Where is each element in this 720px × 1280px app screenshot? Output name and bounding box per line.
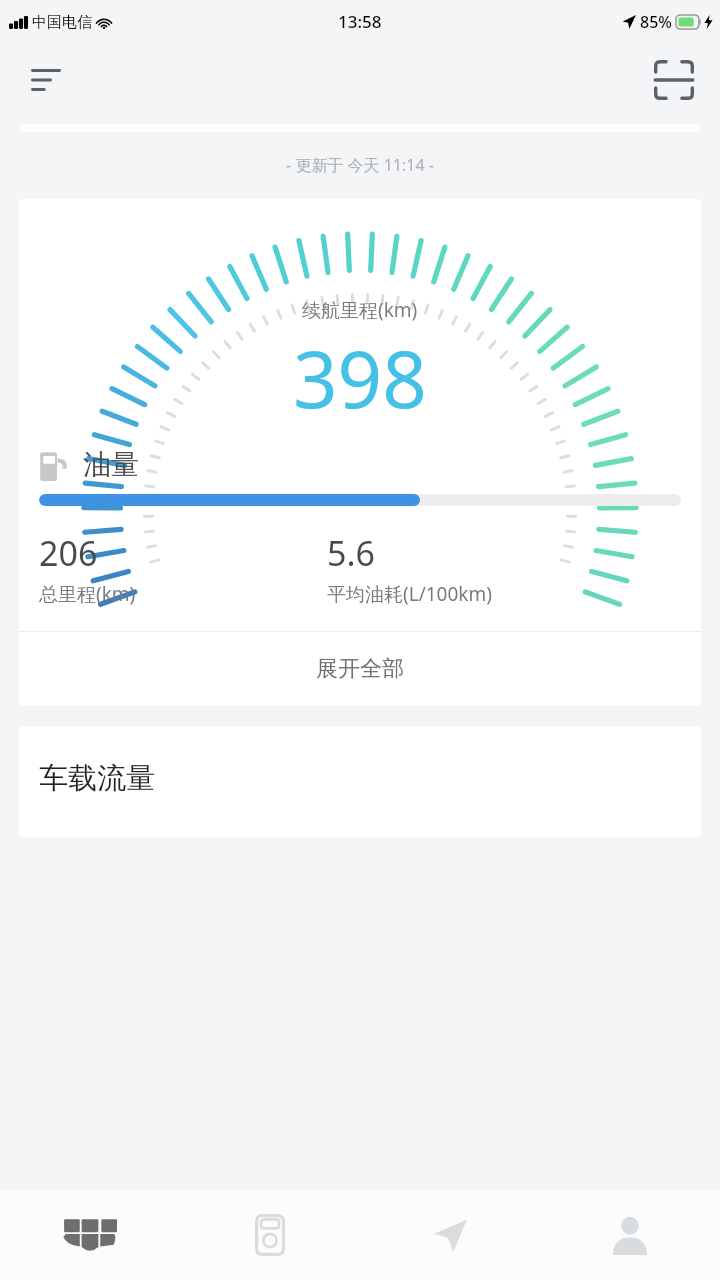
button[interactable]: Navigation (360, 1190, 540, 1280)
button[interactable]: Vehicle (0, 1190, 180, 1280)
staticText: 展开全部 (316, 655, 404, 683)
staticText: 206 (39, 530, 98, 576)
button[interactable]: 展开全部 (19, 632, 701, 706)
staticText: 85% (640, 11, 672, 33)
button[interactable]: Menu (18, 52, 74, 108)
button[interactable]: Profile (540, 1190, 720, 1280)
staticText: 中国电信 (32, 13, 92, 32)
staticText: 13:58 (338, 10, 382, 33)
staticText: 油量 (83, 447, 139, 482)
staticText: 平均油耗(L/100km) (327, 581, 492, 607)
staticText: 续航里程(km) (302, 297, 418, 323)
staticText: 车载流量 (39, 760, 155, 797)
button[interactable]: 车载流量 (19, 726, 701, 837)
button[interactable]: Media (180, 1190, 360, 1280)
staticText: 398 (293, 325, 427, 431)
staticText: 5.6 (327, 530, 376, 576)
staticText: - 更新于 今天 11:14 - (0, 154, 720, 176)
button[interactable]: Scan (646, 52, 702, 108)
staticText: 总里程(km) (39, 581, 136, 607)
